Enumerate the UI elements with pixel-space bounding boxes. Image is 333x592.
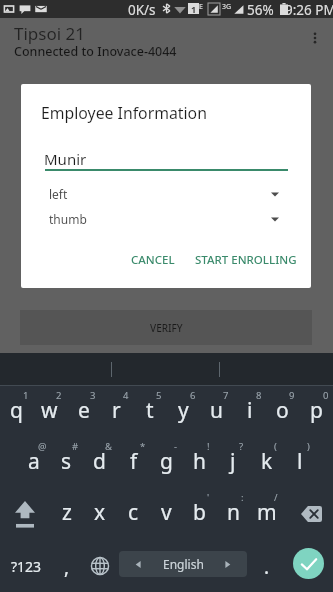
staticText: l xyxy=(297,447,303,476)
staticText: Employee Information xyxy=(41,102,207,124)
staticText: b xyxy=(193,498,206,527)
button[interactable]: v xyxy=(150,488,183,539)
staticText: m xyxy=(257,498,277,527)
button[interactable]: s xyxy=(50,437,83,488)
staticText: 5 xyxy=(156,389,162,402)
staticText: 1 xyxy=(23,389,29,402)
button[interactable]: t xyxy=(133,386,166,437)
staticText: ? xyxy=(239,440,244,453)
button[interactable]: More options xyxy=(305,28,325,48)
staticText: E xyxy=(199,2,203,12)
staticText: thumb xyxy=(49,211,87,227)
button[interactable]: Backspace xyxy=(290,488,333,539)
staticText: s xyxy=(61,447,72,476)
staticText: ' xyxy=(207,491,210,504)
staticText: 3 xyxy=(90,389,96,402)
staticText: ) xyxy=(307,440,310,453)
button[interactable]: w xyxy=(33,386,66,437)
button[interactable]: g xyxy=(150,437,183,488)
button[interactable]: . xyxy=(252,539,282,592)
button[interactable]: VERIFY xyxy=(20,310,312,345)
staticText: - xyxy=(174,440,178,453)
button[interactable]: l xyxy=(283,437,316,488)
button[interactable]: p xyxy=(300,386,333,437)
staticText: g xyxy=(160,447,173,476)
staticText: d xyxy=(93,447,106,476)
staticText: u xyxy=(210,396,223,425)
button[interactable]: r xyxy=(100,386,133,437)
staticText: 56% xyxy=(247,1,274,19)
staticText: 1 xyxy=(191,3,197,14)
staticText: Munir xyxy=(44,149,87,169)
staticText: English xyxy=(163,556,204,572)
button[interactable]: ?123 xyxy=(1,539,51,592)
button[interactable]: English xyxy=(119,551,247,577)
staticText: 2 xyxy=(56,389,62,402)
staticText: j xyxy=(230,447,236,476)
button[interactable]: q xyxy=(0,386,33,437)
button[interactable]: Shift xyxy=(0,488,50,539)
button[interactable]: e xyxy=(67,386,100,437)
staticText: VERIFY xyxy=(150,321,183,335)
button[interactable]: Enter xyxy=(293,548,324,579)
staticText: : xyxy=(241,491,244,504)
staticText: 9 xyxy=(289,389,295,402)
staticText: w xyxy=(41,396,58,425)
staticText: y xyxy=(178,396,189,425)
staticText: v xyxy=(161,498,172,527)
staticText: Connected to Inovace-4044 xyxy=(14,43,177,60)
button[interactable]: m xyxy=(250,488,283,539)
staticText: 4 xyxy=(123,389,129,402)
button[interactable]: y xyxy=(167,386,200,437)
staticText: z xyxy=(62,498,72,527)
button[interactable]: z xyxy=(50,488,83,539)
staticText: a xyxy=(28,447,40,476)
button[interactable]: n xyxy=(217,488,250,539)
button[interactable]: o xyxy=(266,386,299,437)
staticText: ?123 xyxy=(11,557,42,576)
staticText: * xyxy=(140,440,146,453)
staticText: 6 xyxy=(190,389,196,402)
staticText: Tipsoi 21 xyxy=(14,22,85,45)
button[interactable]: u xyxy=(200,386,233,437)
staticText: @ xyxy=(38,440,47,453)
staticText: 0K/s xyxy=(128,1,156,19)
button[interactable]: j xyxy=(216,437,249,488)
staticText: c xyxy=(128,498,139,527)
button[interactable]: Change language xyxy=(85,539,115,592)
staticText: ! xyxy=(207,440,210,453)
button[interactable]: h xyxy=(183,437,216,488)
button[interactable]: START ENROLLING xyxy=(188,246,304,274)
staticText: k xyxy=(261,447,273,476)
staticText: 3G xyxy=(222,2,232,12)
button[interactable]: thumb xyxy=(43,208,303,230)
button[interactable]: d xyxy=(83,437,116,488)
button[interactable]: f xyxy=(117,437,150,488)
staticText: n xyxy=(227,498,240,527)
staticText: 7 xyxy=(223,389,229,402)
button[interactable]: k xyxy=(250,437,283,488)
button[interactable]: a xyxy=(17,437,50,488)
staticText: e xyxy=(78,396,90,425)
staticText: f xyxy=(130,447,138,476)
staticText: # xyxy=(72,440,79,453)
button[interactable]: i xyxy=(233,386,266,437)
staticText: o xyxy=(276,396,289,425)
button[interactable]: b xyxy=(183,488,216,539)
staticText: / xyxy=(274,491,278,504)
staticText: left xyxy=(49,186,68,202)
button[interactable]: left xyxy=(43,183,303,205)
staticText: x xyxy=(94,498,106,527)
staticText: START ENROLLING xyxy=(195,252,297,268)
staticText: h xyxy=(193,447,206,476)
staticText: t xyxy=(146,396,154,425)
staticText: , xyxy=(64,554,70,580)
button[interactable]: x xyxy=(83,488,116,539)
button[interactable]: , xyxy=(52,539,82,592)
staticText: p xyxy=(310,396,323,425)
staticText: i xyxy=(247,396,253,425)
button[interactable]: c xyxy=(117,488,150,539)
button[interactable]: CANCEL xyxy=(122,246,184,274)
staticText: . xyxy=(264,554,270,580)
staticText: 8 xyxy=(256,389,262,402)
